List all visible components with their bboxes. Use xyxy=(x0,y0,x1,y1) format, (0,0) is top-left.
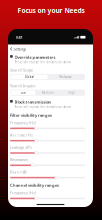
staticText: 9:41 xyxy=(15,34,22,40)
button[interactable]: Workspace xyxy=(47,75,84,79)
button[interactable]: Block transmission xyxy=(10,99,85,109)
staticText: Medium xyxy=(42,91,53,94)
staticText: Resonance xyxy=(10,157,28,162)
button[interactable]: High xyxy=(60,90,84,95)
staticText: Override parameters xyxy=(15,54,56,60)
staticText: Leakage offs xyxy=(10,145,32,150)
staticText: Filter visibility ranges xyxy=(10,112,52,118)
staticText: Frequency (Hz) xyxy=(10,190,36,195)
staticText: Global xyxy=(25,75,34,79)
button[interactable]: Override parameters xyxy=(10,54,85,64)
staticText: Propagation (Hz) xyxy=(10,202,38,208)
button[interactable]: Low xyxy=(11,90,35,95)
staticText: These will replace the defaults set abov… xyxy=(15,105,72,109)
staticText: Low xyxy=(20,91,25,94)
button[interactable]: Settings xyxy=(10,46,85,51)
staticText: Settings xyxy=(13,46,26,52)
button[interactable]: Global xyxy=(11,75,47,79)
staticText: Workspace xyxy=(59,75,72,79)
staticText: Burn / dB xyxy=(10,169,27,174)
staticText: Frequency (Hz) xyxy=(10,120,36,125)
staticText: Arc rate / Hz xyxy=(10,132,33,138)
staticText: Focus on your Needs xyxy=(17,6,84,15)
staticText: These will replace the defaults set abov… xyxy=(15,60,72,64)
staticText: Search Impact xyxy=(10,83,35,88)
staticText: High xyxy=(68,91,75,94)
button[interactable]: Medium xyxy=(35,90,60,95)
staticText: Block transmission xyxy=(15,99,52,105)
staticText: Search Scope xyxy=(10,67,33,73)
staticText: Channel visibility ranges xyxy=(10,182,59,188)
